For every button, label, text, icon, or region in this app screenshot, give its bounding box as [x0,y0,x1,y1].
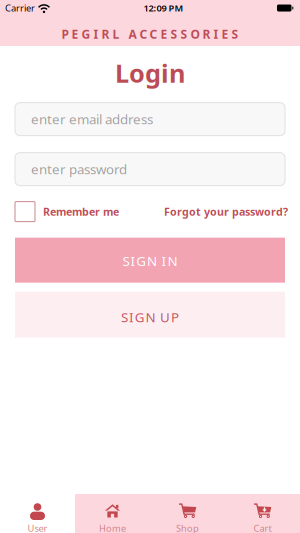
staticText: Shop [176,522,199,533]
staticText: PEGIRL ACCESSORIES [61,26,238,42]
staticText: Remember me [43,205,119,219]
button[interactable]: Shop [150,494,225,533]
staticText: SIGN UP [121,308,179,326]
button[interactable]: Remember me [15,202,119,222]
button[interactable]: enter password [15,153,285,186]
staticText: 12:09 PM [143,2,183,14]
staticText: SIGN IN [123,252,177,270]
staticText: Cart [253,522,271,533]
button[interactable]: User [0,494,75,533]
staticText: Home [99,522,126,533]
staticText: Carrier [5,2,35,14]
button[interactable]: SIGN IN [15,238,285,283]
button[interactable]: enter email address [15,103,285,136]
staticText: enter email address [31,110,153,128]
staticText: Forgot your password? [164,205,288,219]
button[interactable]: Forgot your password? [164,205,288,219]
staticText: User [27,522,47,533]
button[interactable]: SIGN UP [15,292,285,338]
button[interactable]: Home [75,494,150,533]
staticText: enter password [31,160,127,178]
button[interactable]: Cart [225,494,300,533]
staticText: Login [115,56,185,90]
